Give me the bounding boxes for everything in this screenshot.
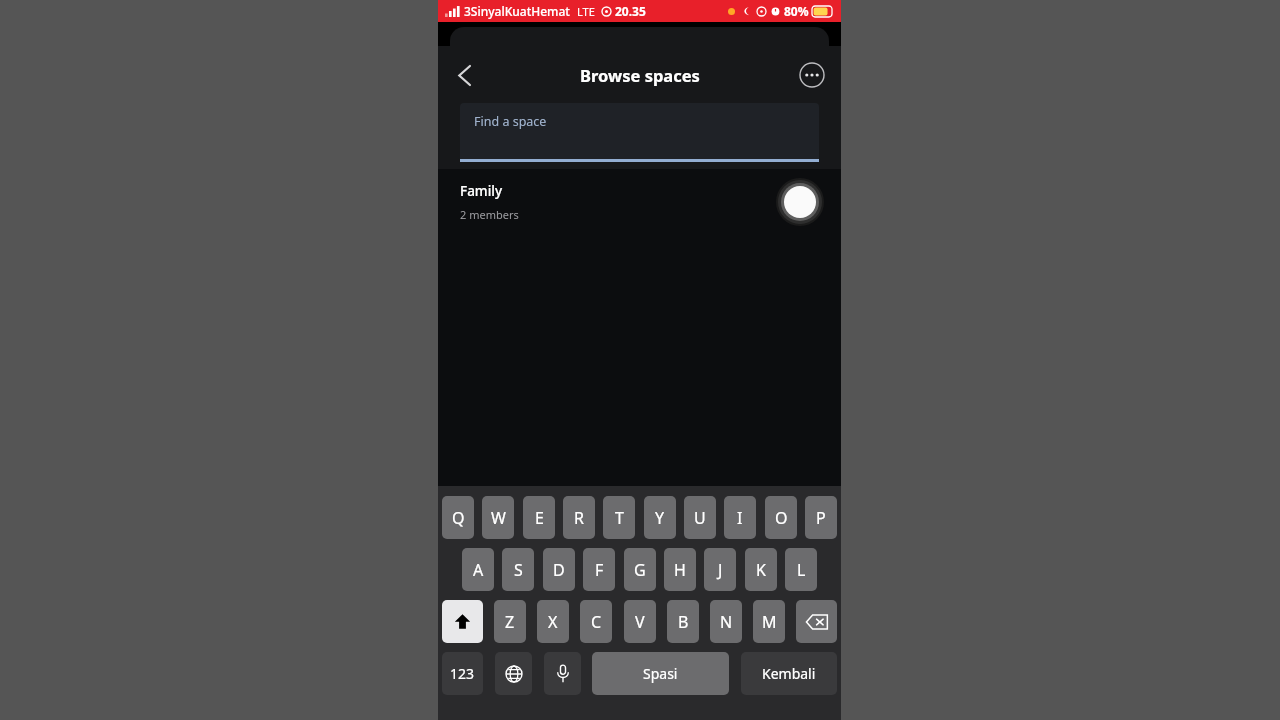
button[interactable]: U	[684, 496, 716, 539]
button[interactable]: Z	[494, 600, 526, 643]
staticText: M	[762, 611, 777, 633]
staticText: H	[674, 559, 686, 581]
button[interactable]: B	[667, 600, 699, 643]
staticText: 20.35	[615, 3, 646, 19]
button[interactable]: P	[805, 496, 837, 539]
button[interactable]: D	[543, 548, 575, 591]
staticText: 3SinyalKuatHemat	[464, 3, 570, 19]
staticText: F	[595, 559, 604, 581]
button[interactable]: R	[563, 496, 595, 539]
staticText: J	[718, 559, 723, 581]
staticText: U	[694, 507, 706, 529]
button[interactable]: Y	[644, 496, 676, 539]
staticText: D	[553, 559, 565, 581]
button[interactable]: X	[537, 600, 569, 643]
staticText: E	[535, 507, 544, 529]
staticText: T	[615, 507, 624, 529]
button[interactable]: More options	[799, 62, 825, 88]
staticText: Z	[505, 611, 515, 633]
staticText: 123	[450, 664, 475, 683]
staticText: L	[797, 559, 806, 581]
staticText: K	[756, 559, 766, 581]
staticText: 80%	[784, 3, 809, 19]
staticText: 2 members	[460, 207, 519, 222]
button[interactable]: shift	[442, 600, 483, 643]
button[interactable]: M	[753, 600, 785, 643]
button[interactable]: S	[502, 548, 534, 591]
staticText: S	[514, 559, 523, 581]
other: Family avatar	[776, 178, 824, 226]
staticText: Browse spaces	[580, 64, 700, 86]
staticText: O	[775, 507, 788, 529]
button[interactable]: C	[580, 600, 612, 643]
button[interactable]: T	[603, 496, 635, 539]
button[interactable]: A	[462, 548, 494, 591]
staticText: B	[678, 611, 689, 633]
button[interactable]: G	[624, 548, 656, 591]
staticText: Find a space	[474, 113, 547, 130]
staticText: C	[591, 611, 602, 633]
staticText: Q	[452, 507, 465, 529]
button[interactable]: E	[523, 496, 555, 539]
button[interactable]: V	[624, 600, 656, 643]
button[interactable]: J	[704, 548, 736, 591]
button[interactable]: Family	[438, 169, 841, 235]
button[interactable]: Spasi	[592, 652, 729, 695]
staticText: G	[634, 559, 646, 581]
staticText: R	[574, 507, 584, 529]
button[interactable]: mic	[544, 652, 581, 695]
button[interactable]: Back	[448, 59, 480, 91]
staticText: Y	[655, 507, 665, 529]
staticText: W	[491, 507, 506, 529]
button[interactable]: O	[765, 496, 797, 539]
button[interactable]: Q	[442, 496, 474, 539]
button[interactable]: Kembali	[741, 652, 837, 695]
staticText: Kembali	[762, 664, 816, 683]
staticText: Family	[460, 182, 503, 200]
button[interactable]: K	[745, 548, 777, 591]
button[interactable]: N	[710, 600, 742, 643]
staticText: LTE	[577, 4, 595, 19]
button[interactable]: globe	[495, 652, 532, 695]
button[interactable]: W	[482, 496, 514, 539]
button[interactable]: L	[785, 548, 817, 591]
button[interactable]: I	[724, 496, 756, 539]
staticText: A	[473, 559, 484, 581]
staticText: P	[816, 507, 826, 529]
button[interactable]: del	[796, 600, 837, 643]
staticText: V	[635, 611, 645, 633]
staticText: N	[720, 611, 733, 633]
button[interactable]: 123	[442, 652, 483, 695]
button[interactable]: H	[664, 548, 696, 591]
button[interactable]: F	[583, 548, 615, 591]
staticText: X	[548, 611, 558, 633]
staticText: I	[737, 507, 743, 529]
staticText: Spasi	[643, 664, 678, 683]
button[interactable]: Find a space	[460, 103, 819, 159]
